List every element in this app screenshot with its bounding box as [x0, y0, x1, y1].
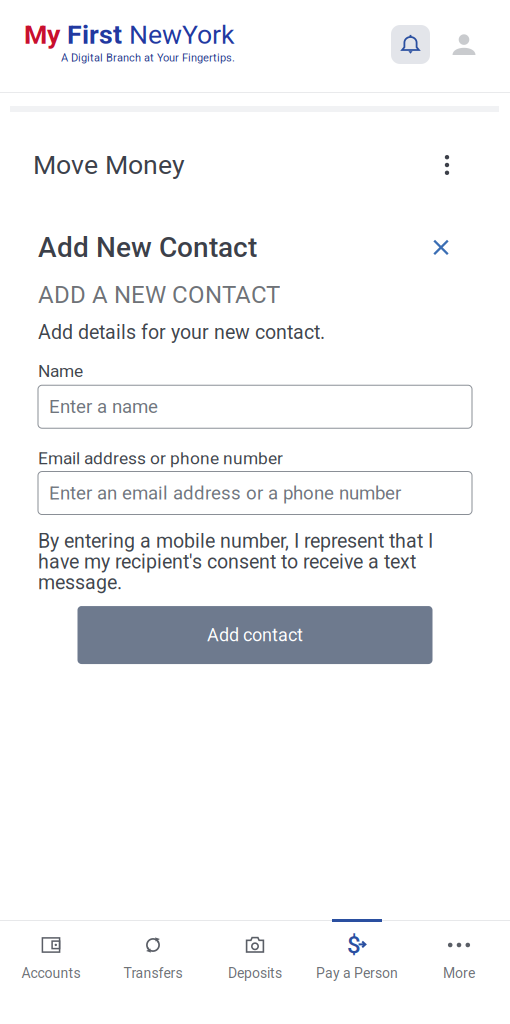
staticText: Transfers — [123, 965, 182, 981]
staticText: Deposits — [228, 965, 282, 981]
staticText: York — [182, 19, 235, 50]
staticText: Add details for your new contact. — [38, 321, 325, 344]
staticText: Add New Contact — [38, 231, 257, 264]
staticText: My — [24, 19, 60, 50]
staticText: New — [122, 19, 182, 50]
staticText: More — [443, 965, 475, 981]
staticText: Name — [38, 361, 83, 381]
staticText: Move Money — [33, 149, 185, 181]
button[interactable]: Accounts — [0, 919, 102, 1024]
button[interactable]: More — [408, 919, 510, 1024]
button[interactable]: Transfers — [102, 919, 204, 1024]
button[interactable]: Add contact — [77, 606, 432, 664]
staticText: First — [60, 19, 122, 50]
button[interactable]: Deposits — [204, 919, 306, 1024]
staticText: $ — [347, 931, 361, 959]
button[interactable]: More options — [431, 149, 463, 181]
staticText: Pay a Person — [316, 965, 398, 981]
button[interactable]: Notifications — [391, 25, 430, 64]
staticText: Email address or phone number — [38, 448, 283, 468]
button[interactable]: Close — [425, 231, 457, 263]
staticText: By entering a mobile number, I represent… — [38, 529, 433, 594]
staticText: Accounts — [21, 965, 80, 981]
staticText: Enter an email address or a phone number — [49, 482, 401, 504]
staticText: Add contact — [207, 624, 303, 646]
button[interactable]: $ — [306, 919, 408, 1024]
button[interactable]: Profile — [452, 25, 476, 64]
staticText: A Digital Branch at Your Fingertips. — [61, 51, 235, 64]
staticText: ADD A NEW CONTACT — [38, 281, 280, 309]
staticText: Enter a name — [49, 396, 158, 418]
